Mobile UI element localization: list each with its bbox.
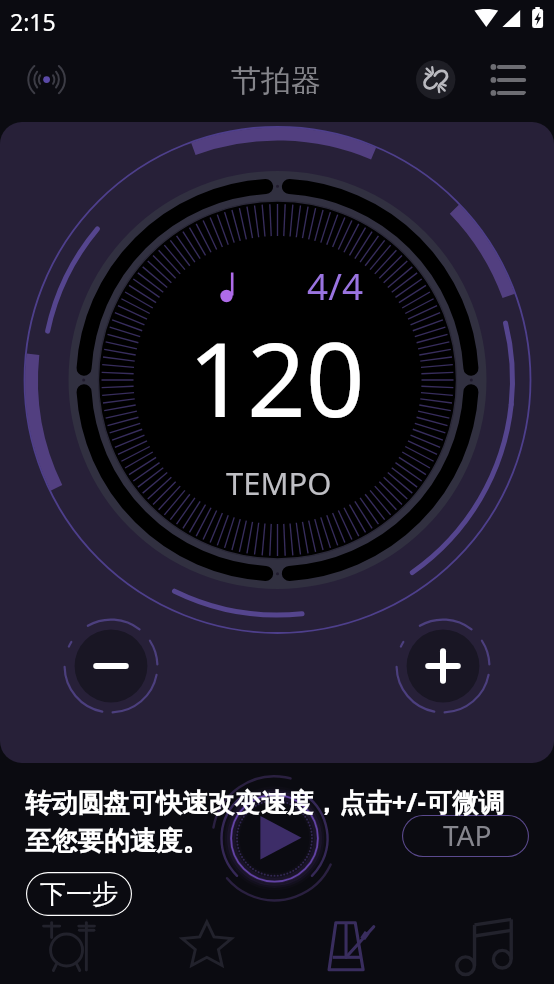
button[interactable]: Songs bbox=[415, 910, 554, 984]
button[interactable]: Menu bbox=[483, 56, 530, 103]
staticText: 节拍器 bbox=[231, 62, 321, 100]
staticText: TAP bbox=[443, 816, 492, 854]
button[interactable]: Favorites bbox=[138, 910, 276, 984]
button[interactable]: TAP bbox=[402, 815, 529, 857]
staticText: 转动圆盘可快速改变速度，点击+/-可微调 至您要的速度。 bbox=[25, 784, 505, 858]
button[interactable]: Unlink bbox=[412, 56, 459, 103]
staticText: 120 bbox=[188, 307, 365, 447]
button[interactable]: Drums bbox=[0, 910, 138, 984]
button[interactable]: Play bbox=[204, 768, 345, 909]
staticText: TEMPO bbox=[226, 462, 332, 504]
staticText: 4/4 bbox=[307, 260, 364, 310]
staticText: 下一步 bbox=[40, 878, 118, 911]
button[interactable]: Metronome bbox=[276, 910, 415, 984]
button[interactable]: Sound mode bbox=[22, 55, 71, 104]
staticText: 2:15 bbox=[10, 6, 56, 37]
button[interactable]: Increase tempo bbox=[393, 616, 493, 716]
button[interactable]: 下一步 bbox=[26, 872, 132, 916]
button[interactable]: Decrease tempo bbox=[61, 616, 161, 716]
